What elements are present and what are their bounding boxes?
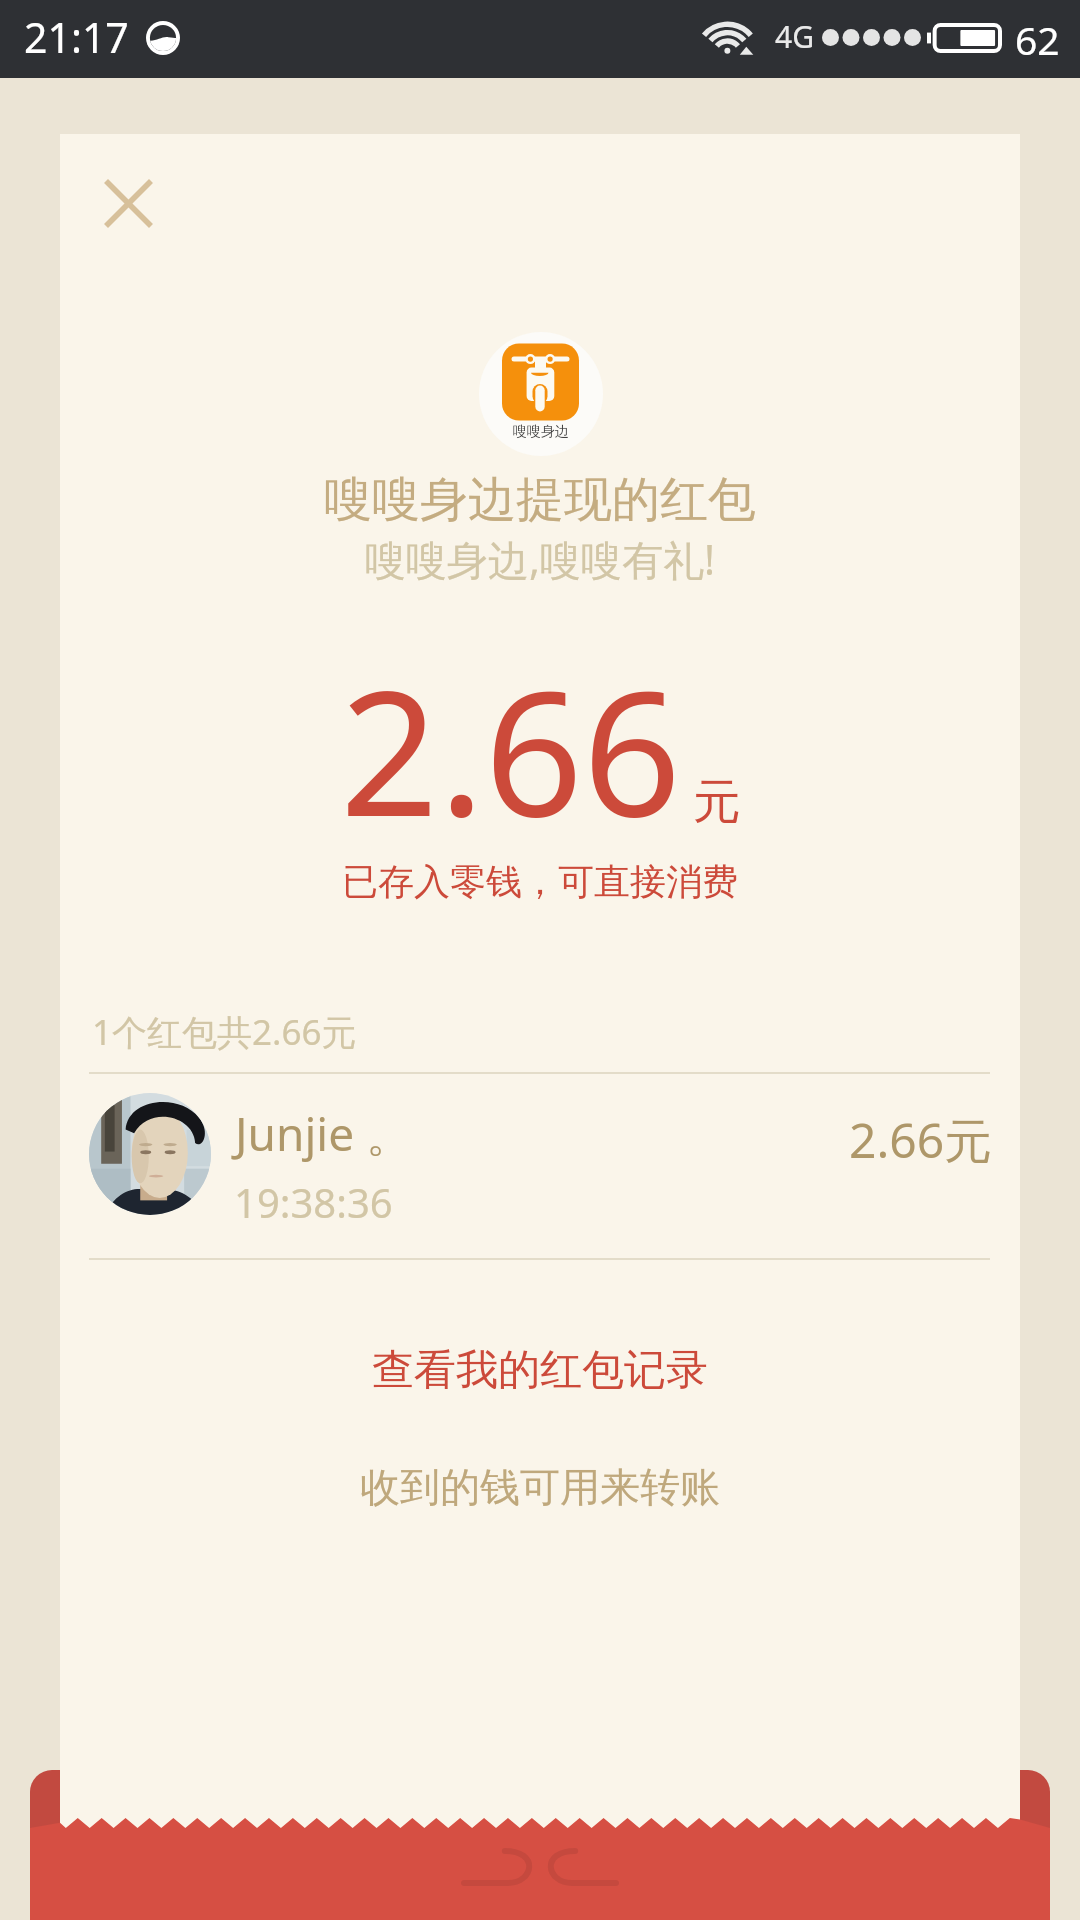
staticText: 62 <box>1015 13 1060 66</box>
button[interactable]: Junjie 。 <box>60 1074 1020 1258</box>
staticText: 2.66 <box>340 632 682 866</box>
staticText: 19:38:36 <box>234 1175 393 1229</box>
staticText: 嗖嗖身边,嗖嗖有礼! <box>60 531 1020 587</box>
staticText: 已存入零钱，可直接消费 <box>60 859 1020 904</box>
staticText: 嗖嗖身边提现的红包 <box>60 470 1020 530</box>
staticText: 元 <box>693 772 741 832</box>
button[interactable]: 收到的钱可用来转账 <box>60 1452 1020 1522</box>
staticText: 21:17 <box>24 9 129 65</box>
staticText: 收到的钱可用来转账 <box>360 1462 720 1512</box>
staticText: 2.66元 <box>849 1107 993 1173</box>
staticText: 嗖嗖身边 <box>513 423 569 441</box>
staticText: Junjie 。 <box>235 1102 413 1165</box>
staticText: 查看我的红包记录 <box>372 1344 708 1397</box>
staticText: 1个红包共2.66元 <box>92 1008 357 1056</box>
button[interactable]: 查看我的红包记录 <box>60 1330 1020 1410</box>
staticText: 4G <box>775 16 814 57</box>
button[interactable]: Close <box>81 156 175 250</box>
